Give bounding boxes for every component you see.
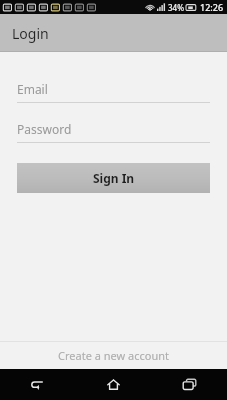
staticText: 12:26 [200,1,224,13]
staticText: 34% [168,2,184,13]
staticText: Login [12,24,49,43]
staticText: Sign In [93,170,135,186]
staticText: Create a new account [58,348,169,363]
button[interactable]: Create a new account [0,342,227,369]
button[interactable]: Back [0,369,75,400]
button[interactable]: Sign In [17,163,210,193]
staticText: Password [17,121,72,137]
button[interactable]: Home [75,369,151,400]
button[interactable]: Email [17,78,210,103]
staticText: Email [17,81,48,97]
button[interactable]: Password [17,118,210,143]
button[interactable]: Recent apps [151,369,227,400]
